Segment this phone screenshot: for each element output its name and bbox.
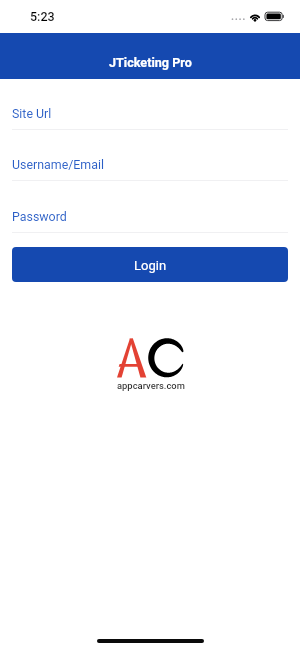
staticText: JTicketing Pro [109,55,192,70]
staticText: 5:23 [30,9,55,24]
other: Cellular signal [230,16,246,23]
staticText: Login [134,258,167,273]
staticText: Password [12,209,67,224]
button[interactable]: Password [12,209,288,233]
button[interactable]: Login [12,247,288,282]
staticText: Site Url [12,106,52,121]
other: Wi-Fi [248,11,262,22]
other: Battery [264,11,286,22]
button[interactable]: Username/Email [12,157,288,181]
staticText: Username/Email [12,157,105,172]
button[interactable]: Site Url [12,106,288,130]
staticText: appcarvers.com [117,380,185,391]
